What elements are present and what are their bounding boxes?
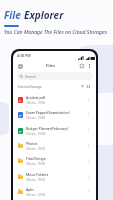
button[interactable]: Music Folders (13, 169, 96, 184)
button[interactable]: Acrobat.pdf (13, 92, 96, 107)
staticText: Exam Papper(Examination) (26, 110, 70, 115)
button[interactable]: Final Design (13, 153, 96, 168)
staticText: 4:30 PM (17, 53, 31, 58)
staticText: Explorer (24, 8, 64, 22)
button[interactable]: Budget Planner(February) (13, 123, 96, 138)
staticText: Budget Planner(February) (26, 126, 68, 131)
staticText: Search (25, 74, 36, 79)
staticText: Internal Storage (18, 85, 42, 89)
button[interactable]: Item menu (86, 128, 91, 133)
button[interactable]: More options (86, 63, 92, 69)
button[interactable]: Search (17, 72, 93, 80)
button[interactable]: Grid view (86, 84, 91, 89)
button[interactable]: Item menu (86, 158, 91, 163)
button[interactable]: Item menu (86, 97, 91, 102)
staticText: 3 Items - 10 KB (26, 147, 45, 151)
staticText: Files (46, 63, 56, 69)
button[interactable]: Item menu (86, 174, 91, 179)
button[interactable]: Info (79, 63, 85, 69)
staticText: 3 Items - 10 KB (26, 132, 45, 136)
button[interactable]: Apks (13, 184, 96, 199)
button[interactable]: Sort (80, 84, 85, 89)
button[interactable]: Exam Papper(Examination) (13, 107, 96, 122)
button[interactable]: Menu (17, 63, 23, 69)
button[interactable]: Photos (13, 138, 96, 153)
staticText: 3 Items - 10 KB (26, 193, 45, 197)
staticText: 3 Items - 10 KB (26, 162, 45, 166)
staticText: Acrobat.pdf (26, 95, 46, 100)
staticText: Apks (26, 187, 34, 192)
staticText: 3 Items - 10 KB (26, 178, 45, 182)
staticText: You Can Manage The Files on Cloud Storag… (4, 29, 107, 36)
staticText: Photos (26, 141, 38, 146)
staticText: File (4, 8, 24, 22)
button[interactable]: Item menu (86, 189, 91, 194)
staticText: 3 Items - 10 KB (26, 101, 45, 105)
staticText: 3 Items - 10 KB (26, 116, 45, 120)
button[interactable]: Item menu (86, 112, 91, 117)
staticText: Final Design (26, 156, 46, 161)
button[interactable]: Item menu (86, 143, 91, 148)
staticText: Music Folders (26, 172, 49, 177)
